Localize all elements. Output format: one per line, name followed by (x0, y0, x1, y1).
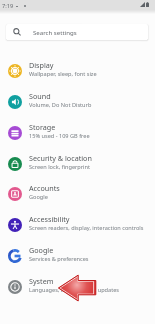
staticText: Search settings (33, 28, 77, 36)
staticText: Screen lock, fingerprint (29, 163, 91, 171)
staticText: Screen readers, display, interaction con… (29, 224, 144, 232)
staticText: 7:19 (2, 2, 14, 10)
staticText: Services & preferences (29, 255, 89, 263)
button[interactable]: Display (0, 55, 155, 86)
button[interactable]: Search settings (6, 24, 148, 40)
staticText: Volume, Do Not Disturb (29, 101, 92, 109)
other: Arrow pointing to System (57, 273, 97, 303)
button[interactable]: Security & location (0, 148, 155, 179)
staticText: System (29, 276, 54, 286)
staticText: 15% used - 109 GB free (29, 132, 90, 140)
staticText: Sound (29, 91, 51, 101)
button[interactable]: Accounts (0, 178, 155, 209)
staticText: Wallpaper, sleep, font size (29, 70, 97, 78)
button[interactable]: Google (0, 240, 155, 271)
staticText: Google (29, 245, 54, 255)
staticText: Languages, time, backup, updates (29, 286, 120, 294)
button[interactable]: System (0, 271, 155, 302)
staticText: Google (29, 193, 48, 201)
staticText: Accessibility (29, 214, 70, 224)
button[interactable]: Storage (0, 117, 155, 148)
staticText: Storage (29, 122, 56, 132)
staticText: Display (29, 60, 54, 70)
button[interactable]: Sound (0, 86, 155, 117)
button[interactable]: Accessibility (0, 209, 155, 240)
staticText: Accounts (29, 183, 60, 193)
staticText: Security & location (29, 153, 92, 163)
